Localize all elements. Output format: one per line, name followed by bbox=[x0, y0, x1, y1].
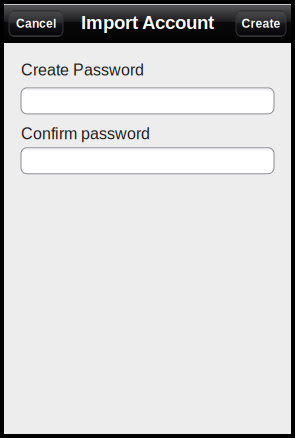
button[interactable]: Create bbox=[236, 10, 286, 36]
staticText: Confirm password bbox=[21, 125, 150, 143]
staticText: Create bbox=[241, 17, 280, 30]
button[interactable]: Create Password bbox=[21, 88, 274, 114]
button[interactable]: Confirm password bbox=[21, 148, 274, 174]
staticText: Cancel bbox=[16, 17, 56, 30]
button[interactable]: Cancel bbox=[9, 10, 63, 36]
staticText: Create Password bbox=[21, 61, 144, 79]
staticText: Import Account bbox=[81, 12, 214, 33]
